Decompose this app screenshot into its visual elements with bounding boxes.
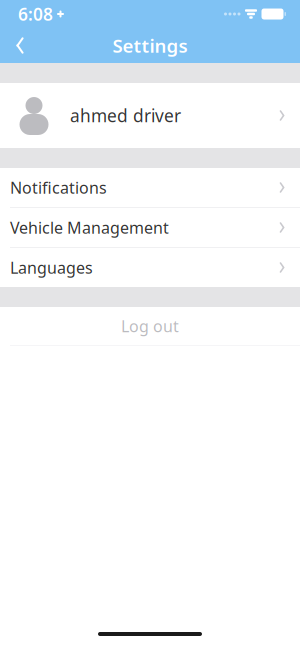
- staticText: Notifications: [10, 177, 107, 198]
- button[interactable]: Languages: [0, 248, 300, 287]
- staticText: Vehicle Management: [10, 217, 169, 238]
- staticText: ahmed driver: [70, 104, 181, 127]
- staticText: Languages: [10, 257, 93, 278]
- button[interactable]: Back: [0, 28, 40, 62]
- button[interactable]: Vehicle Management: [0, 208, 300, 247]
- staticText: 6:08: [18, 2, 53, 25]
- staticText: Log out: [121, 315, 179, 337]
- staticText: Settings: [112, 33, 187, 58]
- button[interactable]: Log out: [0, 307, 300, 345]
- button[interactable]: Notifications: [0, 168, 300, 207]
- button[interactable]: ahmed driver: [0, 83, 300, 148]
